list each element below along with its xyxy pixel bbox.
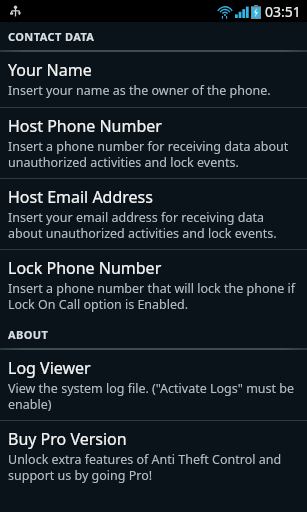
staticText: 03:51	[265, 2, 301, 21]
staticText: View the system log file. ("Activate Log…	[8, 380, 299, 412]
button[interactable]: Buy Pro Version	[0, 421, 307, 491]
staticText: Host Email Address	[8, 186, 153, 208]
staticText: Insert a phone number that will lock the…	[8, 280, 299, 312]
staticText: Insert your email address for receiving …	[8, 209, 299, 241]
button[interactable]: Host Phone Number	[0, 108, 307, 178]
staticText: Log Viewer	[8, 357, 91, 379]
button[interactable]: Host Email Address	[0, 179, 307, 249]
staticText: Your Name	[8, 59, 92, 81]
staticText: CONTACT DATA	[8, 29, 95, 44]
staticText: Host Phone Number	[8, 115, 162, 137]
button[interactable]: Lock Phone Number	[0, 250, 307, 320]
staticText: ABOUT	[8, 327, 49, 342]
button[interactable]: Your Name	[0, 52, 307, 107]
button[interactable]: Log Viewer	[0, 350, 307, 420]
staticText: Lock Phone Number	[8, 257, 162, 279]
staticText: Unlock extra features of Anti Theft Cont…	[8, 451, 299, 483]
staticText: Insert a phone number for receiving data…	[8, 138, 299, 170]
staticText: Insert your name as the owner of the pho…	[8, 82, 271, 99]
staticText: Buy Pro Version	[8, 428, 127, 450]
